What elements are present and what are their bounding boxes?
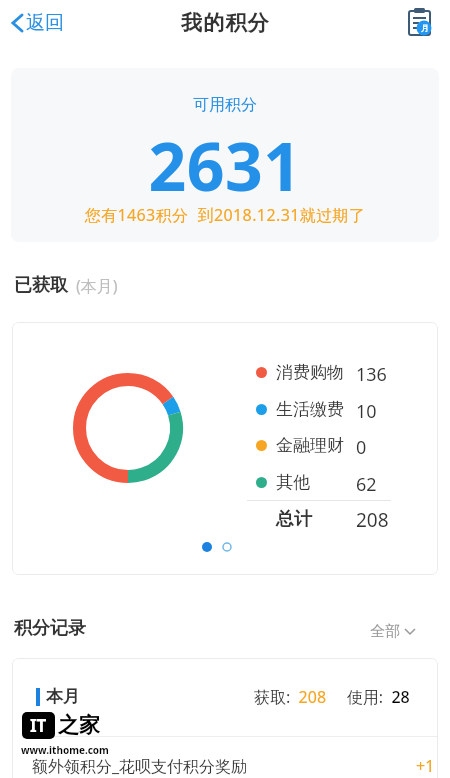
staticText: 可用积分 xyxy=(11,95,439,115)
staticText: 获取: 208 使用: 28 xyxy=(254,686,410,708)
staticText: 已获取 xyxy=(14,274,68,297)
button[interactable]: 月 xyxy=(406,7,438,39)
button[interactable]: 额外领积分_花呗支付积分奖励 xyxy=(12,737,438,778)
button[interactable]: 返回 xyxy=(10,11,64,35)
staticText: 您有1463积分 到2018.12.31就过期了 xyxy=(11,204,439,226)
staticText: 总计 xyxy=(276,508,312,531)
staticText: 2631 xyxy=(11,120,439,210)
staticText: 金融理财 xyxy=(276,435,344,456)
staticText: www.ithome.com xyxy=(21,743,109,757)
staticText: 208 xyxy=(356,507,389,533)
staticText: 消费购物 xyxy=(276,362,344,383)
staticText: 月 xyxy=(421,23,429,33)
staticText: 0 xyxy=(356,435,367,460)
staticText: 其他 xyxy=(276,472,310,493)
staticText: 返回 xyxy=(26,11,64,35)
staticText: 额外领积分_花呗支付积分奖励 xyxy=(32,755,248,777)
staticText: 积分记录 xyxy=(14,617,86,640)
staticText: IT xyxy=(30,714,47,737)
staticText: 生活缴费 xyxy=(276,399,344,420)
button[interactable]: 全部 xyxy=(370,622,416,641)
staticText: +1 xyxy=(416,755,435,777)
staticText: 62 xyxy=(356,472,377,497)
staticText: 我的积分 xyxy=(181,10,270,36)
staticText: 136 xyxy=(356,362,387,387)
staticText: 之家 xyxy=(58,712,100,738)
staticText: 本月 xyxy=(46,686,80,707)
staticText: 10 xyxy=(356,399,377,424)
staticText: 全部 xyxy=(370,622,400,641)
staticText: (本月) xyxy=(76,275,118,297)
